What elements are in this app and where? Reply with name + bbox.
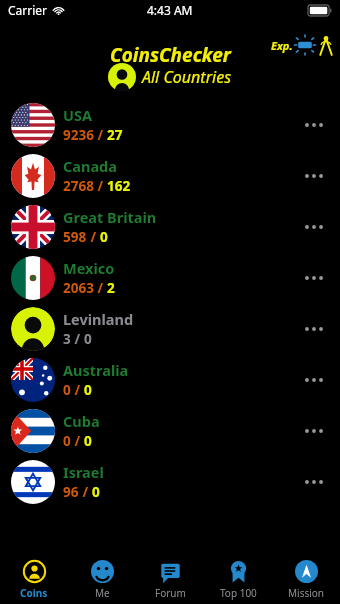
button[interactable]: More options for Mexico: [294, 258, 334, 298]
button[interactable]: Great Britain: [0, 201, 340, 252]
staticText: Canada: [63, 156, 117, 176]
button[interactable]: Coins: [0, 556, 68, 604]
button[interactable]: Mission: [272, 556, 340, 604]
staticText: Cuba: [63, 411, 100, 431]
staticText: 9236: [63, 126, 94, 144]
staticText: 0: [63, 381, 71, 399]
button[interactable]: Experience: [271, 34, 334, 56]
staticText: 4:43 AM: [147, 2, 193, 18]
staticText: /: [94, 279, 107, 297]
button[interactable]: More options for Levinland: [294, 309, 334, 349]
staticText: 0: [84, 330, 92, 348]
button[interactable]: More options for USA: [294, 105, 334, 145]
button[interactable]: USA: [0, 99, 340, 150]
button[interactable]: CoinsChecker: [110, 42, 231, 68]
staticText: 598: [63, 228, 87, 246]
staticText: Exp.: [271, 38, 293, 53]
staticText: /: [71, 432, 84, 450]
staticText: Mission: [288, 586, 325, 600]
button[interactable]: More options for Cuba: [294, 411, 334, 451]
button[interactable]: Cuba: [0, 405, 340, 456]
staticText: 162: [107, 177, 131, 195]
staticText: /: [71, 330, 84, 348]
staticText: /: [87, 228, 100, 246]
staticText: 2063: [63, 279, 94, 297]
button[interactable]: More options for Australia: [294, 360, 334, 400]
button[interactable]: Me: [68, 556, 136, 604]
button[interactable]: Levinland: [0, 303, 340, 354]
staticText: 0: [84, 432, 92, 450]
staticText: /: [71, 381, 84, 399]
staticText: Great Britain: [63, 207, 157, 227]
button[interactable]: More options for Great Britain: [294, 207, 334, 247]
staticText: /: [94, 177, 107, 195]
button[interactable]: Mexico: [0, 252, 340, 303]
staticText: /: [94, 126, 107, 144]
button[interactable]: Israel: [0, 456, 340, 507]
staticText: Israel: [63, 462, 104, 482]
staticText: /: [79, 483, 92, 501]
button[interactable]: All Countries: [108, 63, 232, 91]
staticText: 0: [92, 483, 100, 501]
button[interactable]: More options for Canada: [294, 156, 334, 196]
staticText: Forum: [155, 586, 186, 600]
staticText: 3: [63, 330, 71, 348]
button[interactable]: Australia: [0, 354, 340, 405]
button[interactable]: Canada: [0, 150, 340, 201]
staticText: 2768: [63, 177, 94, 195]
staticText: 2: [107, 279, 115, 297]
staticText: USA: [63, 105, 92, 125]
staticText: CoinsChecker: [110, 42, 231, 68]
staticText: 0: [84, 381, 92, 399]
staticText: 0: [100, 228, 108, 246]
staticText: 27: [107, 126, 123, 144]
staticText: 96: [63, 483, 79, 501]
staticText: Levinland: [63, 309, 134, 329]
staticText: 0: [63, 432, 71, 450]
staticText: Carrier: [8, 2, 48, 18]
staticText: Top 100: [220, 586, 257, 600]
staticText: Australia: [63, 360, 129, 380]
staticText: Coins: [20, 586, 48, 600]
staticText: Mexico: [63, 258, 115, 278]
staticText: Me: [95, 586, 110, 600]
button[interactable]: More options for Israel: [294, 462, 334, 502]
staticText: All Countries: [142, 66, 232, 88]
button[interactable]: Forum: [136, 556, 204, 604]
button[interactable]: Top 100: [204, 556, 272, 604]
